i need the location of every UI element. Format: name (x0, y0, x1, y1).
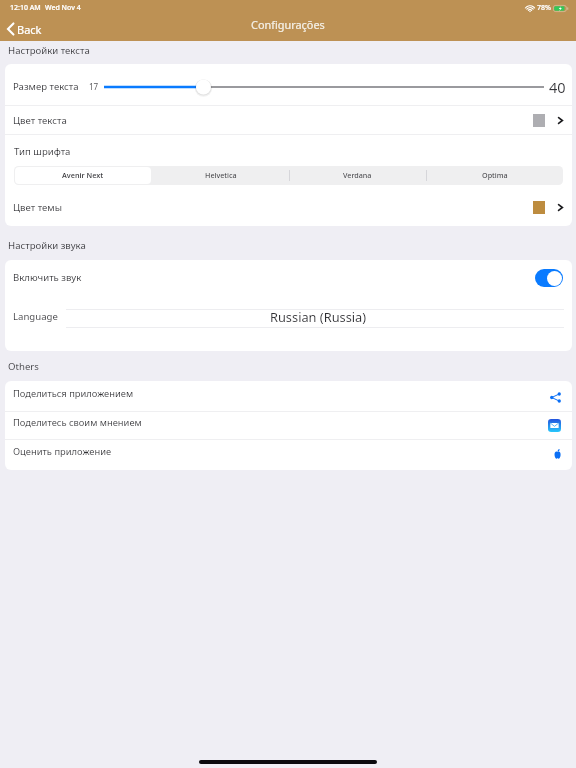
staticText: Настройки текста (8, 44, 90, 57)
button[interactable]: Цвет текста (5, 106, 572, 134)
button[interactable]: Поделиться приложением (5, 381, 572, 411)
staticText: Цвет темы (13, 201, 62, 214)
staticText: Поделитесь своим мнением (13, 416, 142, 429)
other: Rate on App Store (554, 449, 561, 459)
button[interactable]: Поделитесь своим мнением (5, 412, 572, 439)
staticText: 40 (549, 77, 566, 97)
button[interactable]: Optima (426, 166, 563, 185)
other: Share (550, 392, 561, 403)
staticText: Back (17, 22, 42, 37)
staticText: Configurações (251, 17, 325, 32)
button[interactable]: Back (0, 18, 50, 40)
button[interactable]: Включить звук (5, 260, 572, 295)
staticText: Тип шрифта (14, 145, 71, 158)
button[interactable]: Avenir Next (14, 166, 152, 185)
other: Mail feedback (548, 419, 561, 432)
staticText: Wed Nov 4 (45, 3, 81, 13)
staticText: Verdana (343, 170, 372, 180)
button[interactable]: Цвет темы (5, 192, 572, 223)
staticText: Avenir Next (62, 170, 104, 180)
staticText: Поделиться приложением (13, 387, 134, 400)
staticText: Оценить приложение (13, 445, 112, 458)
staticText: Optima (482, 170, 508, 180)
staticText: 12:10 AM (10, 3, 41, 13)
staticText: Включить звук (13, 271, 82, 284)
staticText: Цвет текста (13, 114, 67, 127)
staticText: Настройки звука (8, 239, 86, 252)
staticText: 78% (537, 3, 551, 13)
staticText: Language (13, 310, 58, 323)
staticText: Russian (Russia) (270, 308, 367, 325)
staticText: Helvetica (205, 170, 237, 180)
button[interactable]: Оценить приложение (5, 440, 572, 469)
button[interactable]: Helvetica (152, 166, 289, 185)
staticText: Others (8, 360, 39, 373)
button[interactable]: Verdana (289, 166, 426, 185)
staticText: Размер текста (13, 80, 79, 93)
staticText: 17 (89, 81, 99, 92)
